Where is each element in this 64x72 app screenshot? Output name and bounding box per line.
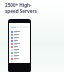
- button[interactable]: [9, 45, 30, 48]
- button[interactable]: [9, 30, 30, 33]
- staticText: speed Servers: [5, 8, 37, 14]
- button[interactable]: [9, 51, 30, 54]
- button[interactable]: [9, 39, 30, 42]
- button[interactable]: [9, 54, 30, 57]
- staticText: 2500+ High-: [5, 2, 32, 8]
- button[interactable]: Search servers: [10, 26, 29, 28]
- button[interactable]: [9, 42, 30, 45]
- button[interactable]: [9, 48, 30, 51]
- button[interactable]: [9, 36, 30, 39]
- button[interactable]: [9, 33, 30, 36]
- button[interactable]: [9, 57, 30, 60]
